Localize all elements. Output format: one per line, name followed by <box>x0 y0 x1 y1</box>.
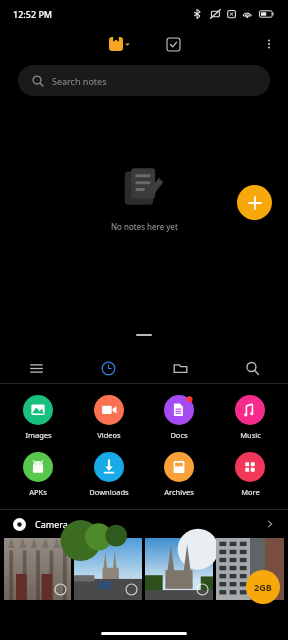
button[interactable]: More <box>217 451 283 498</box>
staticText: 2GB <box>254 581 272 593</box>
button[interactable]: Tasks <box>162 33 184 55</box>
button[interactable]: Archives <box>146 451 212 498</box>
button[interactable]: Photo 2 <box>74 538 142 600</box>
button[interactable]: Search <box>216 352 288 384</box>
button[interactable]: Search notes <box>18 65 270 96</box>
staticText: Music <box>240 430 261 440</box>
button[interactable]: Create note <box>237 185 272 220</box>
staticText: More <box>241 487 260 497</box>
button[interactable]: Downloads <box>76 451 142 498</box>
staticText: Archives <box>164 487 194 497</box>
staticText: Docs <box>170 430 188 440</box>
button[interactable]: Folders <box>144 352 216 384</box>
button[interactable]: Photo 1 <box>4 538 71 600</box>
button[interactable]: Images <box>5 394 71 441</box>
staticText: Videos <box>97 430 121 440</box>
staticText: Camera <box>35 518 68 530</box>
button[interactable]: Photo 4 <box>216 538 284 600</box>
staticText: Downloads <box>89 487 129 497</box>
button[interactable]: More options <box>256 31 282 57</box>
staticText: APKs <box>29 487 47 497</box>
button[interactable]: Notes <box>106 35 133 53</box>
button[interactable]: Storage 2GB <box>246 570 280 604</box>
staticText: No notes here yet <box>111 221 178 232</box>
button[interactable]: Recent <box>72 352 144 384</box>
button[interactable]: Docs <box>146 394 212 441</box>
staticText: Images <box>25 430 52 440</box>
button[interactable]: Menu <box>0 352 72 384</box>
button[interactable]: Camera <box>0 510 288 538</box>
staticText: Search notes <box>52 75 107 87</box>
button[interactable]: Music <box>217 394 283 441</box>
button[interactable]: APKs <box>5 451 71 498</box>
staticText: 12:52 PM <box>13 8 53 20</box>
button[interactable]: Photo 3 <box>145 538 213 600</box>
button[interactable]: Videos <box>76 394 142 441</box>
